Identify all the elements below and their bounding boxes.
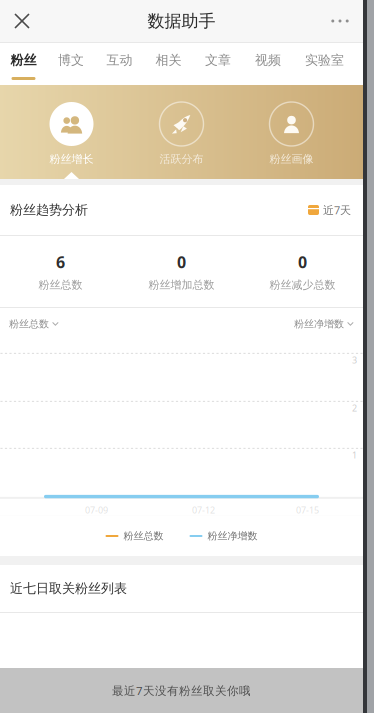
button[interactable]: 活跃分布 [126,102,236,166]
staticText: 6 [56,251,65,273]
button[interactable]: 博文 [47,43,95,85]
button[interactable]: 粉丝 [0,43,47,85]
staticText: 粉丝增长 [49,152,93,166]
staticText: 粉丝总数 [9,318,49,330]
staticText: 粉丝净增数 [207,530,257,542]
staticText: 3 [352,354,357,366]
staticText: 近7天 [323,202,351,217]
staticText: 最近7天没有粉丝取关你哦 [112,683,251,698]
button[interactable]: 粉丝增长 [16,102,126,166]
staticText: 互动 [106,52,132,68]
button[interactable]: 视频 [243,43,293,85]
staticText: 粉丝趋势分析 [10,202,88,218]
button[interactable]: 互动 [95,43,144,85]
staticText: 粉丝增加总数 [148,278,214,292]
staticText: 粉丝画像 [269,152,313,166]
staticText: 07-09 [85,504,108,516]
staticText: 1 [352,449,357,461]
staticText: 粉丝净增数 [294,318,344,330]
staticText: 博文 [58,52,84,68]
staticText: 数据助手 [147,10,215,32]
staticText: 实验室 [305,52,344,68]
button[interactable]: 粉丝总数 [9,312,59,336]
staticText: 活跃分布 [159,152,203,166]
staticText: 近七日取关粉丝列表 [10,580,127,597]
button[interactable]: 相关 [144,43,193,85]
staticText: 文章 [205,52,231,68]
staticText: 视频 [255,52,281,68]
button[interactable]: 实验室 [293,43,356,85]
button[interactable]: 更多 [317,0,363,42]
button[interactable]: 文章 [193,43,243,85]
staticText: 2 [352,402,357,414]
staticText: 07-15 [296,504,319,516]
button[interactable]: 关闭 [0,0,44,42]
staticText: 0 [177,251,186,273]
button[interactable]: 粉丝画像 [236,102,346,166]
staticText: 粉丝 [10,52,36,68]
staticText: 0 [298,251,307,273]
staticText: 粉丝总数 [38,278,82,292]
staticText: 相关 [155,52,181,68]
staticText: 粉丝减少总数 [269,278,335,292]
button[interactable]: 粉丝净增数 [294,312,354,336]
button[interactable]: 近7天 [300,195,351,224]
staticText: 粉丝总数 [123,530,163,542]
staticText: 07-12 [192,504,215,516]
